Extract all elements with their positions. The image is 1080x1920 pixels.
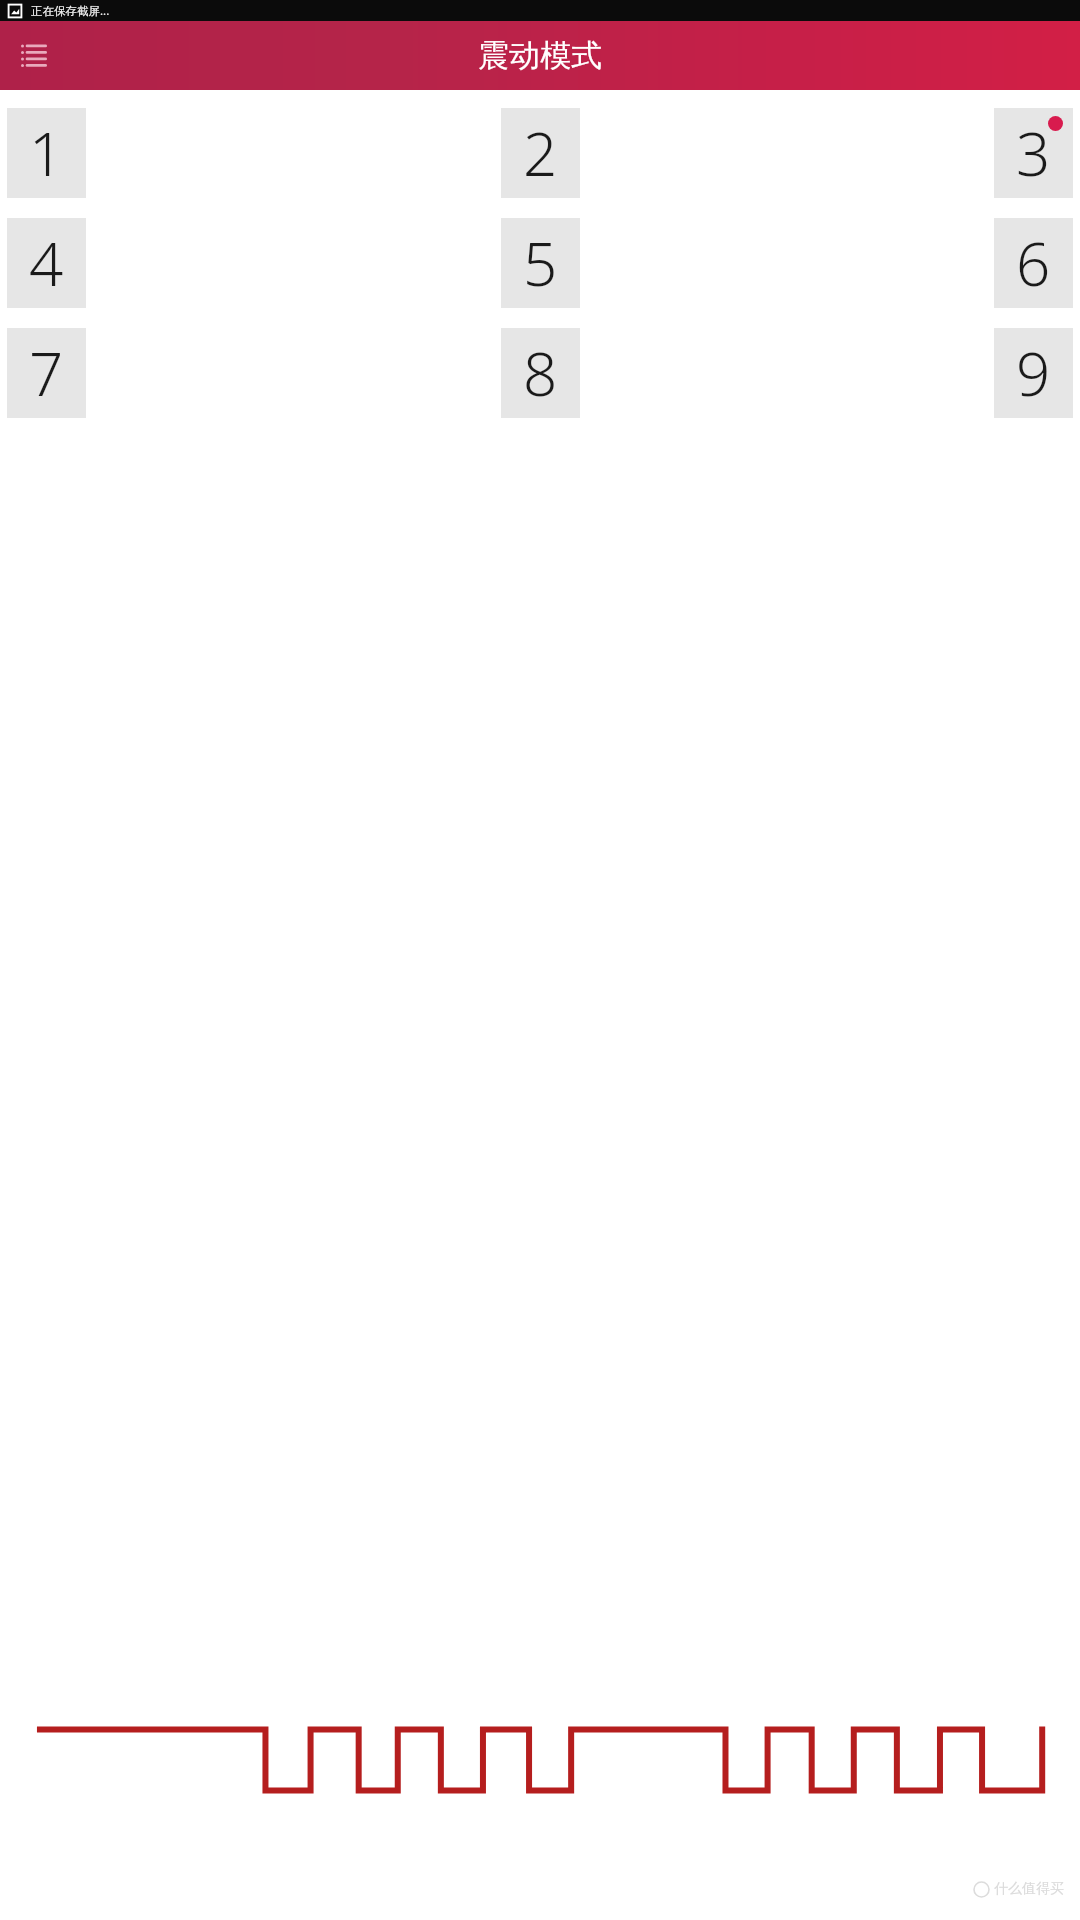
button[interactable]: 7 xyxy=(7,328,86,418)
button[interactable]: 1 xyxy=(7,108,86,198)
staticText: 2 xyxy=(523,112,558,194)
button[interactable]: 2 xyxy=(501,108,580,198)
staticText: 9 xyxy=(1016,332,1051,414)
staticText: 5 xyxy=(523,222,558,304)
staticText: 1 xyxy=(29,112,64,194)
staticText: 3 xyxy=(1016,112,1051,194)
button[interactable]: 9 xyxy=(994,328,1073,418)
staticText: 4 xyxy=(29,222,64,304)
staticText: 震动模式 xyxy=(478,36,602,75)
button[interactable]: 8 xyxy=(501,328,580,418)
button[interactable]: 6 xyxy=(994,218,1073,308)
staticText: 7 xyxy=(29,332,64,414)
staticText: 6 xyxy=(1016,222,1051,304)
staticText: 正在保存截屏... xyxy=(31,3,110,19)
staticText: 8 xyxy=(523,332,558,414)
button[interactable]: 4 xyxy=(7,218,86,308)
button[interactable]: Menu xyxy=(10,32,58,80)
button[interactable]: 3 xyxy=(994,108,1073,198)
staticText: 什么值得买 xyxy=(994,1880,1064,1898)
button[interactable]: 5 xyxy=(501,218,580,308)
